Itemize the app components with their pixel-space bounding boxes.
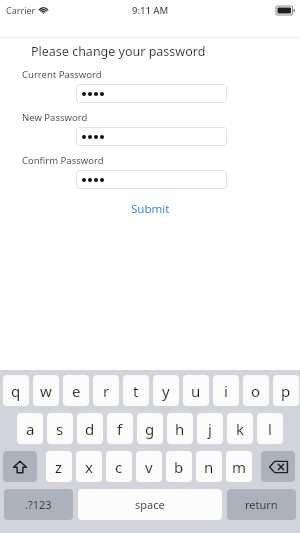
staticText: o [251,381,261,401]
staticText: 9:11 AM [132,4,169,17]
button[interactable]: Confirm Password [76,170,227,189]
staticText: z [55,457,63,477]
staticText: n [204,457,214,477]
button[interactable]: Current Password [76,84,227,103]
staticText: g [145,419,155,439]
staticText: p [281,381,291,401]
staticText: h [175,419,185,439]
button[interactable]: x [76,451,102,482]
button[interactable]: Backspace [261,451,295,482]
button[interactable]: r [93,375,119,406]
button[interactable]: w [33,375,59,406]
button[interactable]: d [77,413,103,444]
staticText: x [85,457,93,477]
button[interactable]: Shift [3,451,37,482]
staticText: t [133,381,139,401]
staticText: return [245,497,278,512]
button[interactable]: g [137,413,163,444]
staticText: Please change your password [31,43,206,60]
staticText: Current Password [22,68,102,81]
staticText: r [103,381,110,401]
button[interactable]: s [47,413,73,444]
staticText: c [115,457,123,477]
button[interactable]: y [153,375,179,406]
staticText: l [268,419,272,439]
staticText: .?123 [25,497,52,512]
staticText: s [56,419,64,439]
button[interactable]: v [136,451,162,482]
staticText: k [236,419,245,439]
button[interactable]: p [273,375,299,406]
staticText: j [208,419,212,439]
button[interactable]: New Password [76,127,227,146]
staticText: i [224,381,228,401]
button[interactable]: t [123,375,149,406]
button[interactable]: space [78,489,222,520]
button[interactable]: z [46,451,72,482]
button[interactable]: u [183,375,209,406]
staticText: v [145,457,153,477]
staticText: d [85,419,95,439]
staticText: New Password [22,111,88,124]
staticText: f [117,419,123,439]
button[interactable]: n [196,451,222,482]
button[interactable]: h [167,413,193,444]
staticText: e [72,381,81,401]
staticText: y [162,381,170,401]
button[interactable]: k [227,413,253,444]
staticText: Submit [131,201,170,217]
button[interactable]: .?123 [4,489,73,520]
button[interactable]: q [3,375,29,406]
staticText: space [135,497,165,512]
button[interactable]: a [17,413,43,444]
button[interactable]: o [243,375,269,406]
button[interactable]: i [213,375,239,406]
button[interactable]: l [257,413,283,444]
button[interactable]: c [106,451,132,482]
staticText: Carrier [6,4,36,16]
button[interactable]: m [226,451,252,482]
button[interactable]: e [63,375,89,406]
button[interactable]: Submit [121,197,180,221]
button[interactable]: return [227,489,296,520]
button[interactable]: j [197,413,223,444]
staticText: a [26,419,35,439]
button[interactable]: b [166,451,192,482]
staticText: w [40,381,52,401]
staticText: b [174,457,184,477]
staticText: q [11,381,21,401]
staticText: Confirm Password [22,154,104,167]
staticText: m [232,457,247,477]
staticText: u [191,381,201,401]
button[interactable]: f [107,413,133,444]
